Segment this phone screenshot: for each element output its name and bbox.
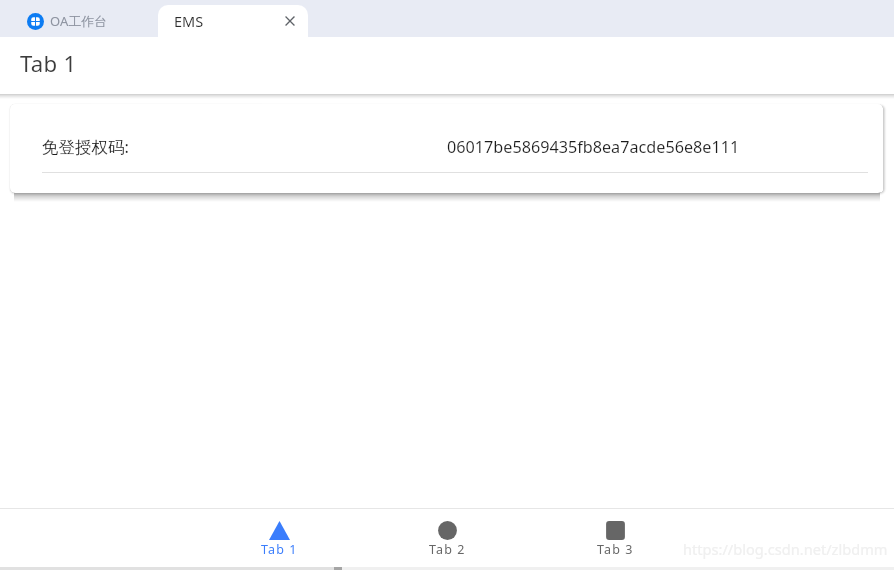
staticText: OA工作台: [50, 12, 108, 30]
staticText: EMS: [174, 11, 204, 31]
button[interactable]: EMS: [158, 5, 308, 37]
staticText: Tab 1: [261, 541, 298, 558]
button[interactable]: Tab 1: [237, 512, 321, 562]
staticText: 06017be5869435fb8ea7acde56e8e111: [447, 136, 740, 158]
button[interactable]: Tab 2: [405, 512, 489, 562]
button[interactable]: Tab 3: [573, 512, 657, 562]
staticText: 免登授权码:: [42, 135, 129, 158]
staticText: Tab 1: [20, 48, 77, 78]
staticText: Tab 3: [597, 541, 634, 558]
button[interactable]: Close tab: [279, 10, 301, 32]
button[interactable]: 免登授权码:: [10, 104, 883, 172]
button[interactable]: OA工作台: [27, 0, 108, 37]
staticText: Tab 2: [429, 541, 466, 558]
staticText: https://blog.csdn.net/zlbdmm: [683, 539, 888, 559]
button[interactable]: [0, 567, 894, 570]
